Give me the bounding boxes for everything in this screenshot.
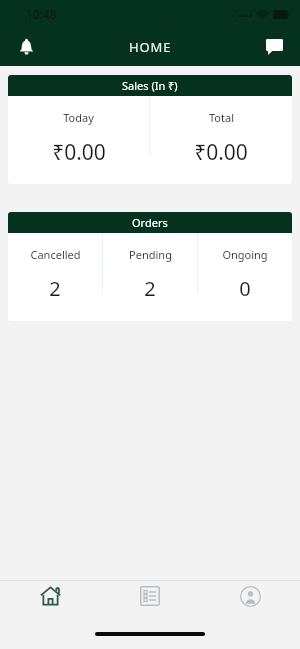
button[interactable]: Orders <box>100 581 200 625</box>
button[interactable]: Sales (In ₹) <box>8 75 292 184</box>
staticText: Sales (In ₹) <box>122 78 178 93</box>
button[interactable]: Profile <box>200 581 300 625</box>
staticText: Total <box>209 110 234 125</box>
staticText: Today <box>63 110 94 125</box>
staticText: HOME <box>129 38 172 56</box>
staticText: 10:48 <box>26 6 57 22</box>
button[interactable]: Notifications <box>8 29 44 65</box>
button[interactable]: Messages <box>256 29 292 65</box>
staticText: ₹0.00 <box>52 138 106 167</box>
button[interactable]: Orders <box>8 212 292 321</box>
staticText: Cancelled <box>30 247 81 262</box>
staticText: Pending <box>129 247 172 262</box>
staticText: 2 <box>49 275 61 302</box>
button[interactable]: Home <box>0 581 100 625</box>
staticText: Orders <box>132 215 168 230</box>
staticText: 0 <box>239 275 251 302</box>
staticText: 2 <box>144 275 156 302</box>
staticText: ₹0.00 <box>194 138 248 167</box>
staticText: Ongoing <box>222 247 268 262</box>
